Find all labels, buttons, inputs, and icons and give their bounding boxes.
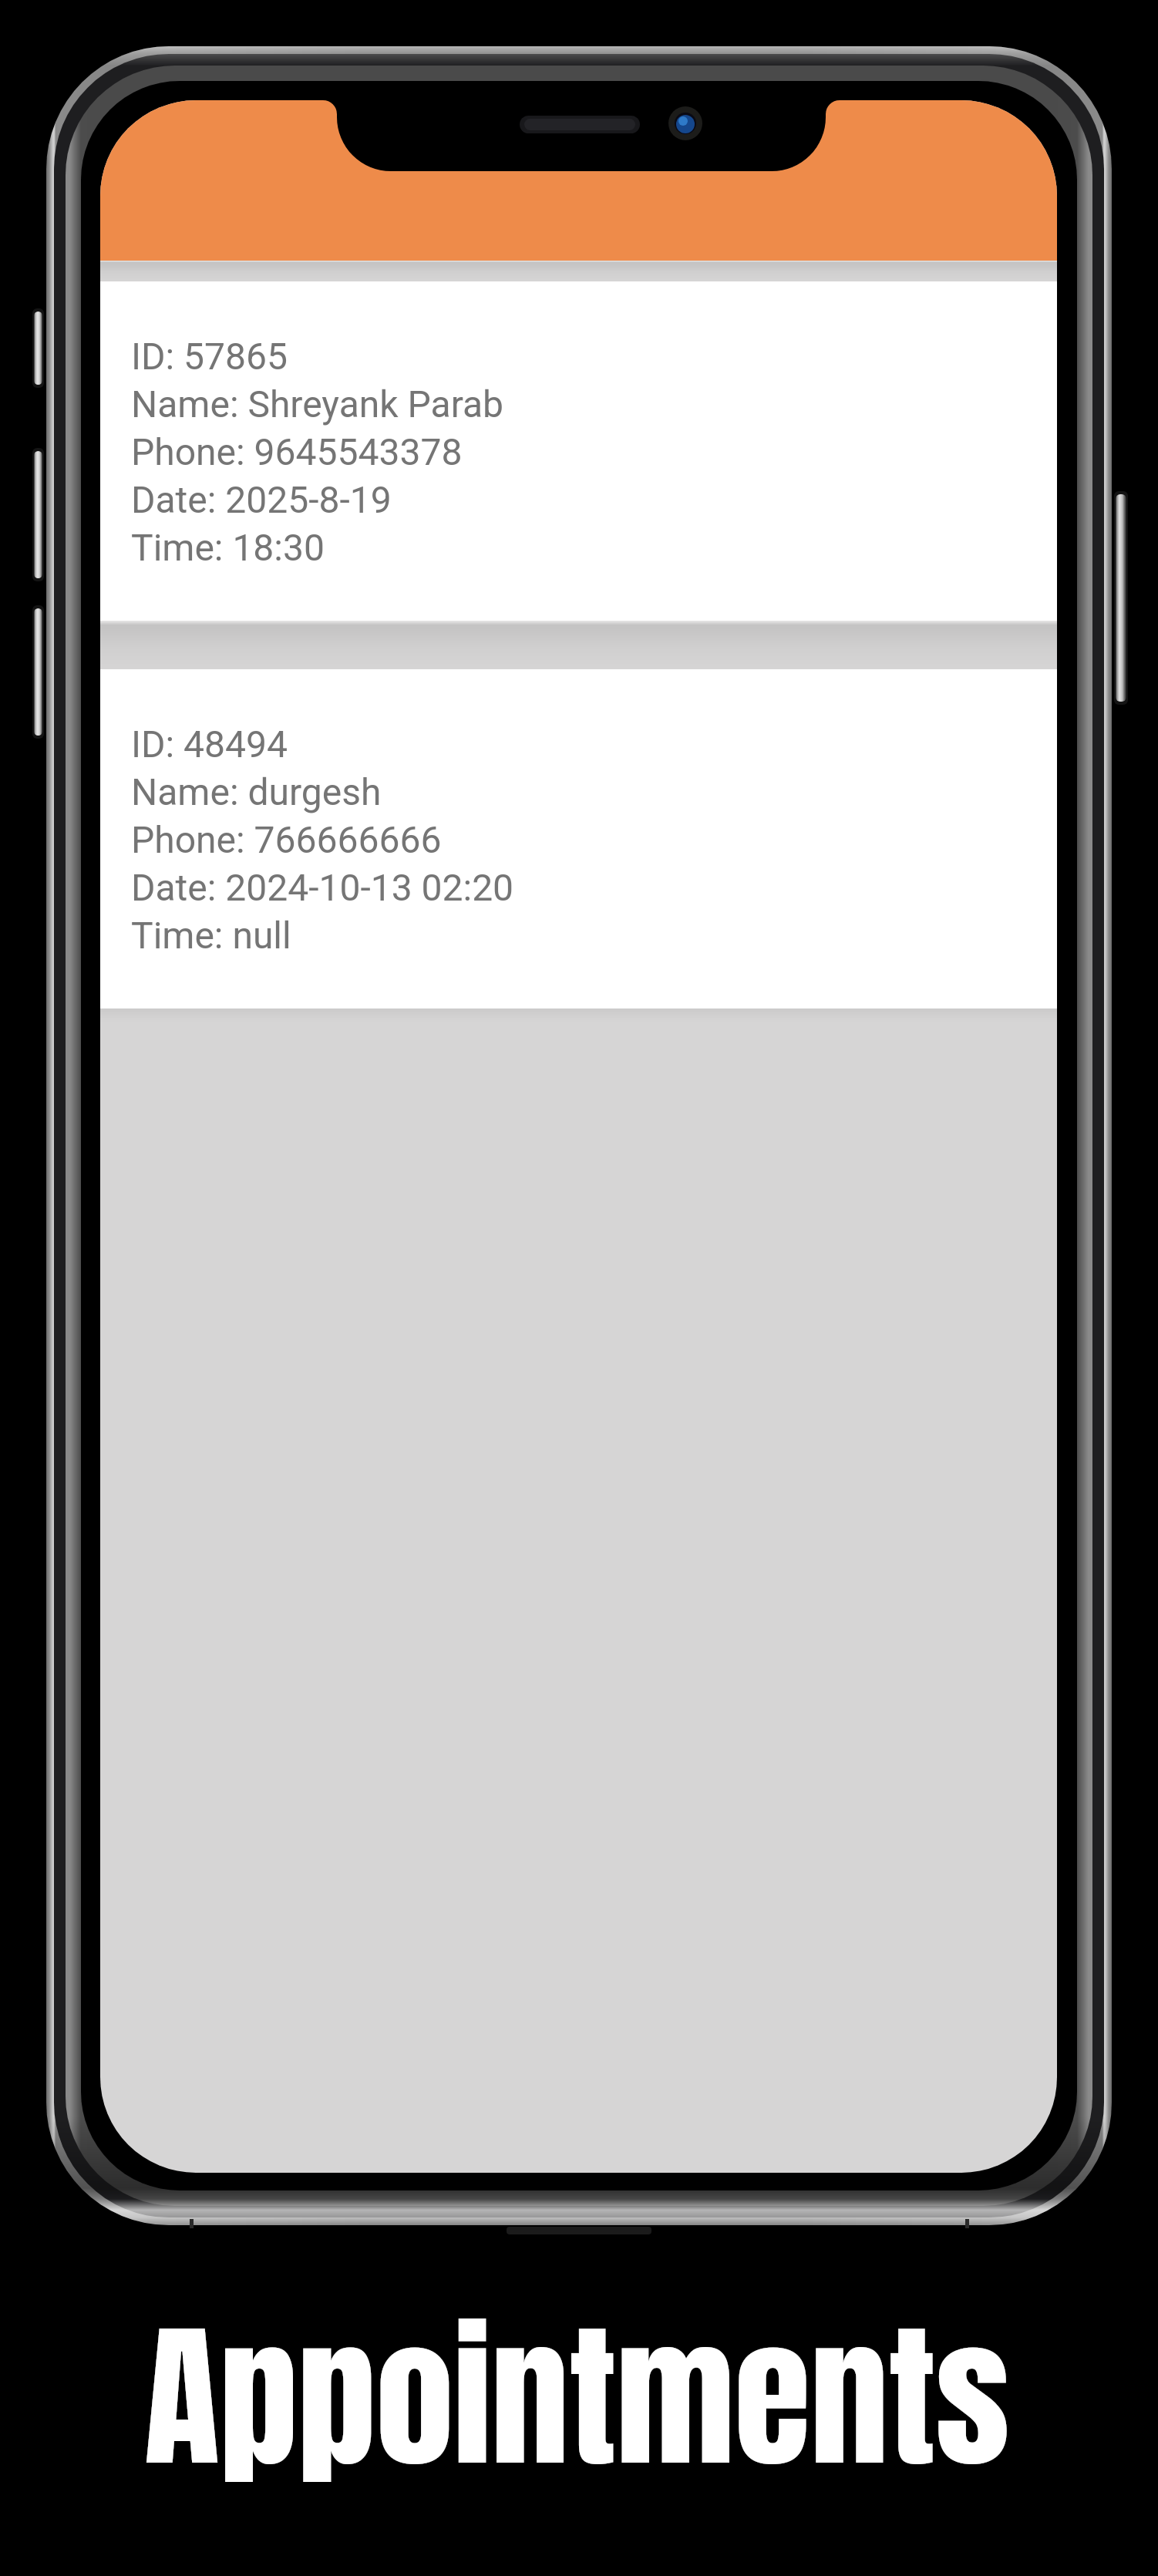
staticText: Date: 2025-8-19 — [131, 478, 392, 521]
staticText: Phone: 766666666 — [131, 818, 442, 861]
staticText: ID: 57865 — [131, 335, 288, 378]
button[interactable]: ID: 48494 — [100, 669, 1057, 1009]
staticText: Name: durgesh — [131, 770, 382, 813]
staticText: Appointments — [144, 2279, 1010, 2510]
staticText: Time: 18:30 — [131, 526, 325, 569]
staticText: Phone: 9645543378 — [131, 430, 463, 473]
staticText: Time: null — [131, 914, 291, 957]
staticText: Name: Shreyank Parab — [131, 382, 504, 426]
staticText: ID: 48494 — [131, 722, 288, 766]
button[interactable]: ID: 57865 — [100, 281, 1057, 621]
staticText: Date: 2024-10-13 02:20 — [131, 866, 514, 909]
